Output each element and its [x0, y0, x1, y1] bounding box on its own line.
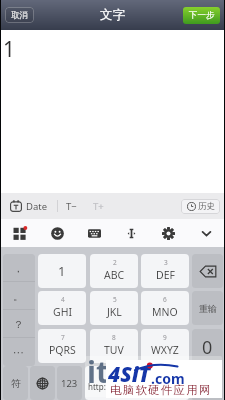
button[interactable]: Settings [150, 219, 187, 247]
button[interactable]: ？ [3, 310, 35, 338]
button[interactable]: 重输 [192, 291, 223, 325]
button[interactable]: 6 [141, 291, 189, 325]
button[interactable]: ， [3, 254, 35, 282]
staticText: 下一步 [189, 10, 215, 21]
button[interactable]: Switch language [30, 366, 55, 400]
staticText: .com [151, 369, 185, 388]
staticText: 电脑软硬件应用网 [110, 383, 212, 397]
staticText: TUV [104, 343, 124, 357]
staticText: 符 [11, 377, 21, 390]
button[interactable]: 历史 [181, 199, 220, 214]
button[interactable]: Hide keyboard [188, 219, 225, 247]
staticText: 2 [113, 258, 117, 267]
button[interactable]: Backspace [192, 254, 223, 288]
staticText: WXYZ [151, 343, 179, 357]
button[interactable]: 3 [141, 254, 189, 288]
staticText: PQRS [49, 343, 76, 357]
staticText: JKL [107, 305, 122, 319]
staticText: 7 [61, 333, 65, 342]
staticText: 取消 [11, 10, 28, 21]
staticText: MNO [152, 305, 178, 319]
button[interactable]: Space [85, 366, 189, 400]
staticText: it [87, 351, 109, 392]
button[interactable]: Emoji [39, 219, 76, 247]
button[interactable]: Keyboard [76, 219, 113, 247]
staticText: ？ [13, 318, 24, 331]
button[interactable]: 取消 [5, 7, 34, 23]
button[interactable]: 下一步 [183, 7, 220, 24]
button[interactable]: ⋯ [3, 338, 35, 366]
button[interactable]: Date [10, 193, 48, 219]
button[interactable]: 7 [38, 329, 86, 363]
button[interactable]: 符 [3, 366, 28, 400]
button[interactable]: 8 [90, 329, 138, 363]
staticText: 4SiT [108, 360, 151, 389]
staticText: 123 [61, 377, 78, 390]
staticText: DEF [156, 268, 175, 282]
button[interactable]: Move cursor [113, 219, 150, 247]
button[interactable]: 5 [90, 291, 138, 325]
staticText: 文字 [100, 7, 125, 23]
staticText: 8 [112, 333, 116, 342]
button[interactable]: 2 [90, 254, 138, 288]
button[interactable]: 1 [38, 254, 86, 288]
button[interactable]: 9 [141, 329, 189, 363]
staticText: T− [66, 200, 77, 213]
staticText: T+ [93, 200, 104, 213]
button[interactable]: Theme [1, 219, 38, 247]
button[interactable]: 0 [192, 329, 223, 400]
staticText: 1 [3, 35, 16, 64]
staticText: 5 [113, 295, 117, 304]
button[interactable]: T− [66, 193, 88, 219]
staticText: 6 [163, 295, 167, 304]
staticText: 3 [164, 258, 168, 267]
staticText: 9 [163, 333, 167, 342]
staticText: 。 [13, 290, 24, 303]
staticText: 重输 [199, 303, 217, 314]
staticText: Date [26, 200, 48, 213]
staticText: http:// [88, 381, 112, 392]
button[interactable]: T+ [93, 193, 115, 219]
staticText: 1 [58, 262, 66, 280]
button[interactable]: 4 [38, 291, 86, 325]
button[interactable]: 123 [57, 366, 82, 400]
staticText: ， [13, 262, 24, 275]
staticText: GHI [53, 305, 72, 319]
staticText: 历史 [198, 201, 215, 212]
staticText: ⋯ [13, 346, 24, 358]
staticText: ABC [104, 268, 125, 282]
button[interactable]: 。 [3, 282, 35, 310]
staticText: 0 [202, 335, 213, 360]
staticText: 4 [61, 295, 65, 304]
